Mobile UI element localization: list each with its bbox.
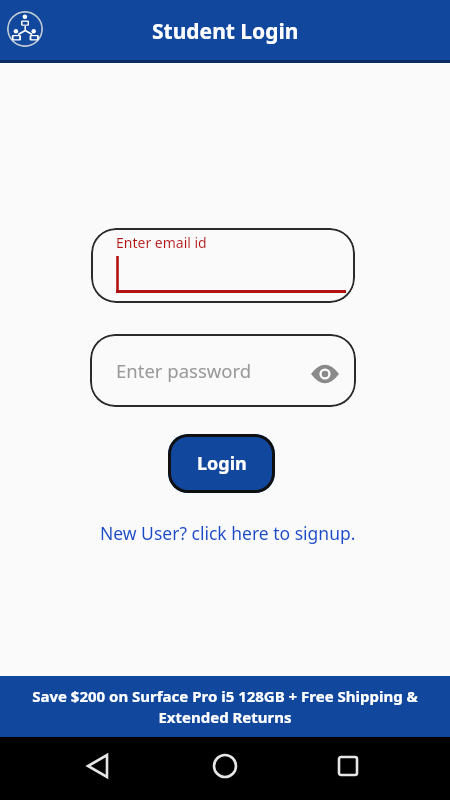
button[interactable]: Save $200 on Surface Pro i5 128GB + Free… [0, 676, 450, 737]
button[interactable] [328, 746, 368, 786]
staticText: Login [197, 451, 247, 476]
button[interactable] [78, 746, 118, 786]
button[interactable]: New User? click here to signup. [100, 521, 356, 545]
button[interactable]: Login [168, 434, 275, 493]
staticText: Enter email id [116, 233, 207, 252]
staticText: Enter password [116, 358, 252, 383]
staticText: Save $200 on Surface Pro i5 128GB + Free… [32, 686, 418, 728]
button[interactable]: Enter email id [91, 228, 355, 303]
button[interactable] [205, 746, 245, 786]
staticText: Student Login [152, 17, 299, 46]
button[interactable] [7, 11, 43, 47]
button[interactable]: Enter password [90, 334, 356, 407]
